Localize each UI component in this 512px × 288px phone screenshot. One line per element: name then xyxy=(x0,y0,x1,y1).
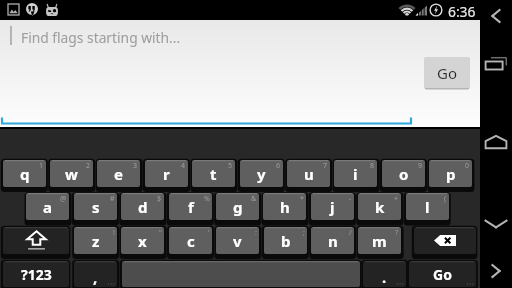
staticText: s xyxy=(92,197,100,217)
button[interactable]: ?123 xyxy=(3,261,69,287)
button[interactable]: Recent apps xyxy=(484,52,508,76)
button[interactable]: k xyxy=(358,193,401,220)
staticText: i xyxy=(353,164,358,184)
staticText: m xyxy=(372,231,387,251)
button[interactable]: v xyxy=(216,227,259,254)
staticText: & xyxy=(251,194,257,204)
button[interactable]: e xyxy=(97,160,140,187)
staticText: : xyxy=(255,228,257,238)
button[interactable]: Back xyxy=(485,4,507,28)
staticText: @ xyxy=(60,194,67,204)
button[interactable]: Shift xyxy=(3,227,69,254)
staticText: t xyxy=(210,164,217,184)
button[interactable]: d xyxy=(121,193,164,220)
staticText: " xyxy=(159,228,162,238)
button[interactable]: l xyxy=(406,193,449,220)
staticText: g xyxy=(233,197,243,217)
staticText: # xyxy=(110,194,115,204)
staticText: ( xyxy=(444,194,447,204)
staticText: $ xyxy=(157,194,162,204)
staticText: ?123 xyxy=(21,265,52,284)
button[interactable]: w xyxy=(50,160,93,187)
staticText: o xyxy=(399,164,409,184)
button[interactable]: j xyxy=(311,193,354,220)
staticText: Go xyxy=(437,63,457,83)
button[interactable]: f xyxy=(169,193,212,220)
button[interactable]: p xyxy=(429,160,472,187)
staticText: 9 xyxy=(418,161,423,171)
button[interactable]: Go xyxy=(424,57,470,90)
staticText: Go xyxy=(433,265,452,284)
button[interactable]: Hide keyboard xyxy=(484,212,508,236)
staticText: y xyxy=(257,164,266,184)
staticText: b xyxy=(281,231,291,251)
staticText: h xyxy=(280,197,290,217)
button[interactable]: . xyxy=(363,261,406,287)
button[interactable]: Space xyxy=(122,261,360,287)
button[interactable]: Go xyxy=(409,261,476,287)
staticText: * xyxy=(300,194,304,204)
staticText: 5 xyxy=(228,161,233,171)
staticText: q xyxy=(20,164,30,184)
button[interactable]: t xyxy=(192,160,235,187)
button[interactable]: s xyxy=(74,193,117,220)
staticText: p xyxy=(446,164,456,184)
staticText: l xyxy=(425,197,430,217)
button[interactable]: n xyxy=(311,227,354,254)
staticText: . xyxy=(382,267,387,287)
button[interactable]: Delete xyxy=(414,227,476,254)
staticText: j xyxy=(330,197,335,217)
staticText: d xyxy=(138,197,148,217)
button[interactable]: Home xyxy=(484,130,508,154)
button[interactable]: r xyxy=(145,160,188,187)
staticText: w xyxy=(65,164,78,184)
button[interactable]: z xyxy=(74,227,117,254)
staticText: 2 xyxy=(86,161,91,171)
button[interactable]: u xyxy=(287,160,330,187)
staticText: v xyxy=(233,231,242,251)
button[interactable]: h xyxy=(263,193,306,220)
button[interactable]: , xyxy=(74,261,117,287)
staticText: ' xyxy=(208,228,210,238)
staticText: e xyxy=(114,164,123,184)
staticText: r xyxy=(163,164,170,184)
button[interactable]: x xyxy=(121,227,164,254)
button[interactable]: c xyxy=(169,227,212,254)
staticText: / xyxy=(349,228,352,238)
button[interactable]: b xyxy=(264,227,307,254)
button[interactable]: q xyxy=(3,160,46,187)
staticText: 7 xyxy=(323,161,328,171)
staticText: 3 xyxy=(133,161,138,171)
button[interactable]: Forward xyxy=(485,258,507,284)
staticText: - xyxy=(349,194,352,204)
staticText: c xyxy=(187,231,195,251)
staticText: 0 xyxy=(465,161,470,171)
staticText: ! xyxy=(113,228,115,238)
staticText: 6:36 xyxy=(448,2,476,21)
staticText: z xyxy=(92,231,100,251)
staticText: 8 xyxy=(370,161,375,171)
button[interactable]: m xyxy=(358,227,401,254)
staticText: ; xyxy=(303,228,305,238)
staticText: ? xyxy=(395,228,399,238)
staticText: 4 xyxy=(181,161,186,171)
staticText: u xyxy=(304,164,314,184)
staticText: 6 xyxy=(276,161,281,171)
staticText: k xyxy=(375,197,385,217)
staticText: 1 xyxy=(39,161,44,171)
staticText: + xyxy=(394,194,399,204)
staticText: % xyxy=(204,194,210,204)
staticText: x xyxy=(138,231,147,251)
staticText: a xyxy=(43,197,52,217)
button[interactable]: o xyxy=(382,160,425,187)
button[interactable]: i xyxy=(334,160,377,187)
button[interactable]: y xyxy=(240,160,283,187)
staticText: n xyxy=(328,231,338,251)
staticText: , xyxy=(93,267,98,287)
staticText: Find flags starting with... xyxy=(21,28,181,47)
staticText: f xyxy=(188,197,194,217)
button[interactable]: g xyxy=(216,193,259,220)
button[interactable]: a xyxy=(26,193,69,220)
